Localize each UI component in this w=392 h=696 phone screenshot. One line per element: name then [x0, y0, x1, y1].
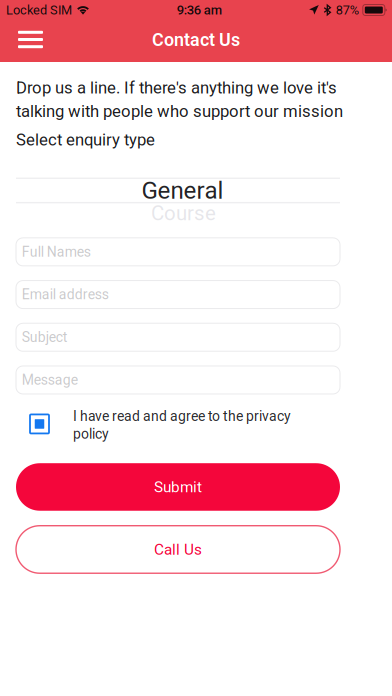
staticText: Call Us — [154, 540, 202, 558]
button[interactable]: Full Names — [16, 238, 340, 266]
button[interactable]: General — [16, 179, 340, 202]
button[interactable]: I have read and agree to the privacy pol… — [0, 408, 392, 442]
staticText: Locked SIM — [6, 2, 72, 17]
staticText: Full Names — [22, 244, 91, 260]
staticText: 87% — [336, 2, 359, 17]
staticText: Message — [22, 372, 78, 388]
button[interactable]: Menu — [8, 20, 52, 62]
button[interactable]: Message — [16, 366, 340, 394]
button[interactable]: Call Us — [16, 526, 340, 573]
staticText: Submit — [154, 478, 202, 496]
staticText: Select enquiry type — [16, 130, 155, 146]
staticText: Course — [151, 201, 216, 225]
staticText: 9:36 am — [177, 2, 222, 18]
staticText: I have read and agree to the privacy pol… — [73, 408, 291, 442]
button[interactable]: Email address — [16, 281, 340, 309]
staticText: Drop us a line. If there's anything we l… — [16, 78, 343, 121]
staticText: Subject — [22, 329, 68, 345]
staticText: Contact Us — [152, 29, 240, 50]
staticText: Email address — [22, 286, 109, 303]
staticText: General — [141, 176, 223, 205]
button[interactable]: Subject — [16, 323, 340, 351]
button[interactable]: Submit — [16, 463, 340, 511]
